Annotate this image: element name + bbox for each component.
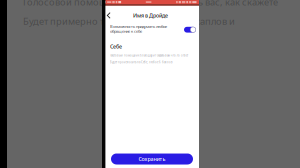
staticText: Себе [110, 43, 122, 50]
staticText: Сохранить [138, 155, 165, 163]
staticText: Текстовый помощник благодарит сказать ва… [110, 54, 188, 64]
staticText: Будет примерно так, шесть баллов из капл… [23, 15, 235, 27]
button[interactable]: Возможность придумать любое обращение к … [102, 24, 199, 34]
staticText: Имя в Дройде [133, 12, 168, 19]
button[interactable]: Back [102, 4, 116, 23]
button[interactable]: Сохранить [111, 153, 193, 164]
staticText: Голосовой помощник сможет называть вас, … [23, 0, 278, 8]
staticText: Возможность придумать любое обращение к … [110, 24, 167, 34]
